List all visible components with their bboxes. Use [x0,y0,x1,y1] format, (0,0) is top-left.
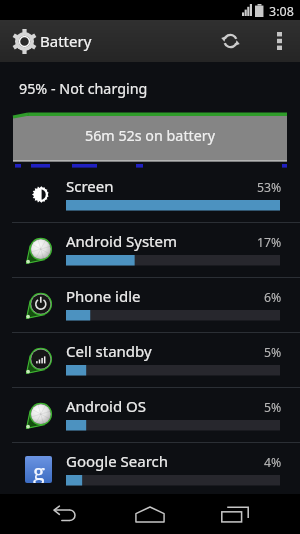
button[interactable]: Android System [0,222,300,277]
staticText: Cell standby [66,341,152,361]
staticText: 5% [264,344,282,361]
button[interactable]: More options [262,20,292,62]
staticText: 4% [264,454,282,471]
button[interactable]: g [0,442,300,497]
staticText: 3:08 [269,3,294,20]
staticText: g [33,456,45,483]
staticText: 56m 52s on battery [85,126,215,145]
button[interactable]: Refresh [208,20,250,62]
staticText: 95% - Not charging [19,79,148,98]
staticText: Android OS [66,396,146,416]
button[interactable]: Screen [0,167,300,222]
staticText: 6% [264,289,282,306]
staticText: Phone idle [66,286,141,306]
staticText: Screen [66,176,114,196]
button[interactable]: Android OS [0,387,300,442]
staticText: Google Search [66,451,169,471]
staticText: 5% [264,399,282,416]
button[interactable]: Back [24,494,108,534]
button[interactable]: Cell standby [0,332,300,387]
staticText: Battery [40,31,92,51]
staticText: 17% [257,234,282,251]
staticText: 53% [257,179,282,196]
button[interactable]: Recents [193,494,277,534]
button[interactable]: Phone idle [0,277,300,332]
staticText: Android System [66,231,178,251]
button[interactable]: Home [108,494,192,534]
